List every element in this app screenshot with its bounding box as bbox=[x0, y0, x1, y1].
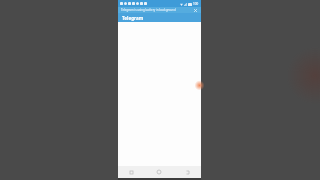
button[interactable]: Telegram is using battery in background bbox=[118, 7, 201, 13]
staticText: Telegram bbox=[122, 15, 144, 21]
staticText: 100 bbox=[193, 2, 199, 6]
button[interactable]: Home bbox=[145, 166, 173, 178]
button[interactable]: Dismiss notification bbox=[193, 8, 198, 13]
staticText: Telegram is using battery in background bbox=[121, 8, 193, 12]
button[interactable]: Recent apps bbox=[173, 166, 201, 178]
button[interactable]: Back bbox=[118, 166, 145, 178]
